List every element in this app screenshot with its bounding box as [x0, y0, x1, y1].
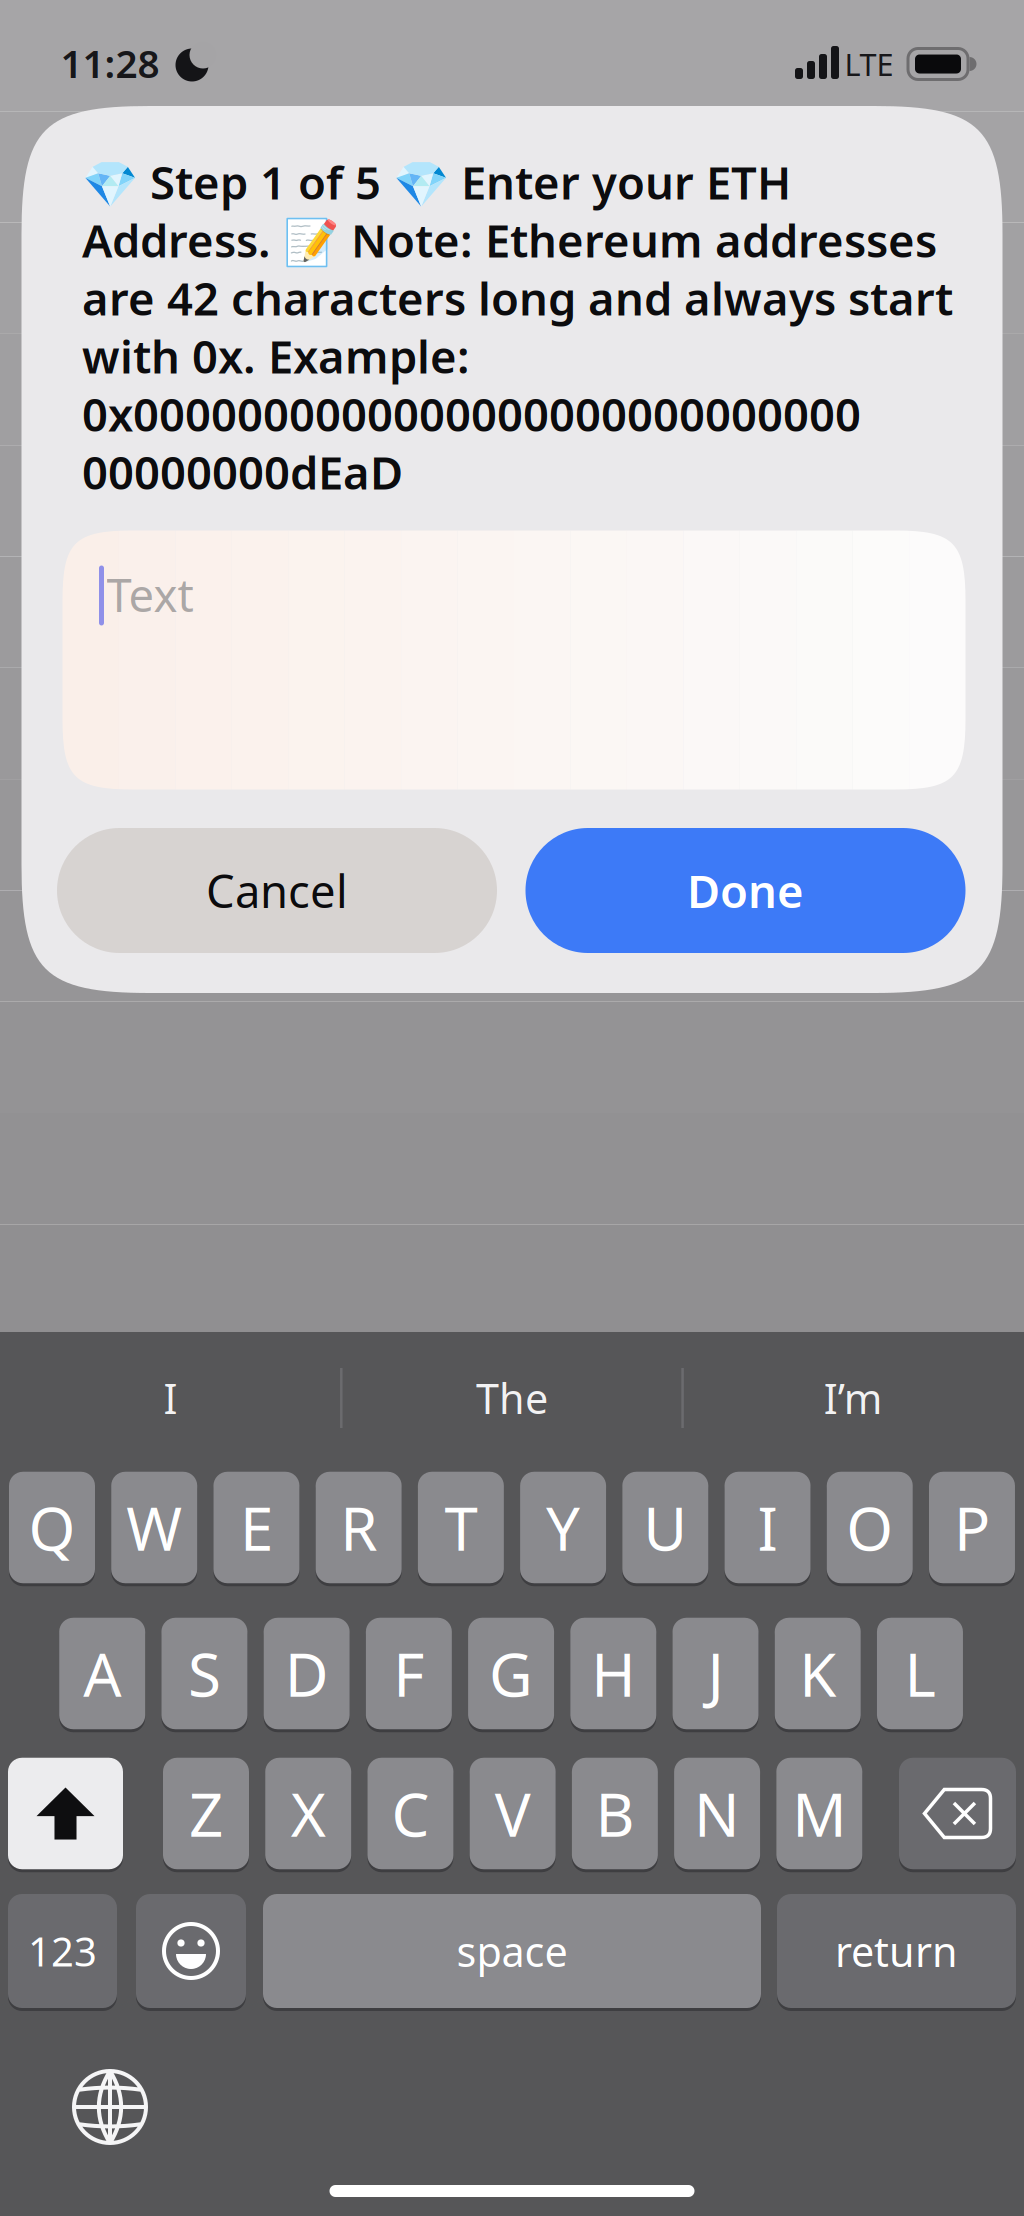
- button[interactable]: Text: [62, 530, 965, 789]
- staticText: M: [792, 1774, 846, 1853]
- staticText: Done: [687, 860, 804, 921]
- button[interactable]: F: [366, 1618, 452, 1729]
- button[interactable]: K: [775, 1618, 861, 1729]
- button[interactable]: P: [929, 1472, 1015, 1583]
- button[interactable]: V: [470, 1758, 556, 1869]
- button[interactable]: Q: [9, 1472, 95, 1583]
- button[interactable]: I: [21, 1343, 321, 1453]
- button[interactable]: Z: [163, 1758, 249, 1869]
- staticText: are 42 characters long and always start: [82, 268, 953, 328]
- staticText: 00000000dEaD: [82, 442, 403, 502]
- staticText: W: [126, 1488, 182, 1567]
- button[interactable]: [8, 1758, 123, 1869]
- staticText: LTE: [844, 44, 893, 84]
- button[interactable]: J: [672, 1618, 758, 1729]
- button[interactable]: space: [263, 1894, 761, 2008]
- button[interactable]: S: [161, 1618, 247, 1729]
- staticText: S: [188, 1634, 221, 1713]
- button[interactable]: N: [674, 1758, 760, 1869]
- staticText: 11:28: [60, 37, 159, 89]
- staticText: K: [799, 1634, 836, 1713]
- button[interactable]: [136, 1894, 246, 2008]
- staticText: I: [164, 1371, 178, 1425]
- staticText: N: [694, 1774, 740, 1853]
- button[interactable]: L: [877, 1618, 963, 1729]
- staticText: Text: [106, 564, 193, 625]
- staticText: O: [846, 1488, 893, 1567]
- staticText: 123: [28, 1924, 97, 1977]
- button[interactable]: I’m: [703, 1343, 1003, 1453]
- button[interactable]: M: [776, 1758, 862, 1869]
- staticText: T: [444, 1488, 477, 1567]
- staticText: with 0x. Example:: [82, 326, 470, 386]
- button[interactable]: T: [418, 1472, 504, 1583]
- button[interactable]: C: [367, 1758, 453, 1869]
- button[interactable]: R: [316, 1472, 402, 1583]
- button[interactable]: Cancel: [57, 828, 497, 953]
- staticText: B: [595, 1774, 634, 1853]
- staticText: E: [240, 1488, 273, 1567]
- staticText: H: [591, 1634, 635, 1713]
- staticText: F: [393, 1634, 424, 1713]
- button[interactable]: 123: [8, 1894, 117, 2008]
- staticText: 0x0000000000000000000000000000: [82, 384, 861, 444]
- button[interactable]: X: [265, 1758, 351, 1869]
- button[interactable]: Y: [520, 1472, 606, 1583]
- staticText: I’m: [824, 1371, 883, 1425]
- button[interactable]: A: [59, 1618, 145, 1729]
- button[interactable]: O: [827, 1472, 913, 1583]
- staticText: R: [340, 1488, 377, 1567]
- staticText: I: [757, 1488, 777, 1567]
- button[interactable]: return: [777, 1894, 1016, 2008]
- button[interactable]: H: [570, 1618, 656, 1729]
- staticText: P: [954, 1488, 990, 1567]
- staticText: Address. 📝 Note: Ethereum addresses: [82, 210, 937, 270]
- staticText: Q: [28, 1488, 75, 1567]
- button[interactable]: [899, 1758, 1016, 1869]
- staticText: Cancel: [206, 860, 348, 921]
- button[interactable]: I: [724, 1472, 810, 1583]
- button[interactable]: [72, 2069, 148, 2145]
- staticText: V: [495, 1774, 531, 1853]
- staticText: space: [456, 1924, 567, 1978]
- staticText: A: [83, 1634, 121, 1713]
- staticText: C: [391, 1774, 429, 1853]
- button[interactable]: Done: [525, 828, 965, 953]
- staticText: 💎 Step 1 of 5 💎 Enter your ETH: [82, 152, 791, 212]
- staticText: Z: [189, 1774, 223, 1853]
- staticText: U: [643, 1488, 687, 1567]
- button[interactable]: The: [362, 1343, 662, 1453]
- staticText: X: [291, 1774, 326, 1853]
- staticText: G: [489, 1634, 533, 1713]
- staticText: L: [904, 1634, 935, 1713]
- staticText: Y: [546, 1488, 580, 1567]
- staticText: D: [285, 1634, 329, 1713]
- button[interactable]: D: [264, 1618, 350, 1729]
- button[interactable]: G: [468, 1618, 554, 1729]
- button[interactable]: W: [111, 1472, 197, 1583]
- button[interactable]: U: [622, 1472, 708, 1583]
- staticText: J: [707, 1634, 723, 1713]
- button[interactable]: B: [572, 1758, 658, 1869]
- button[interactable]: E: [213, 1472, 299, 1583]
- staticText: The: [476, 1371, 548, 1425]
- staticText: return: [835, 1924, 958, 1978]
